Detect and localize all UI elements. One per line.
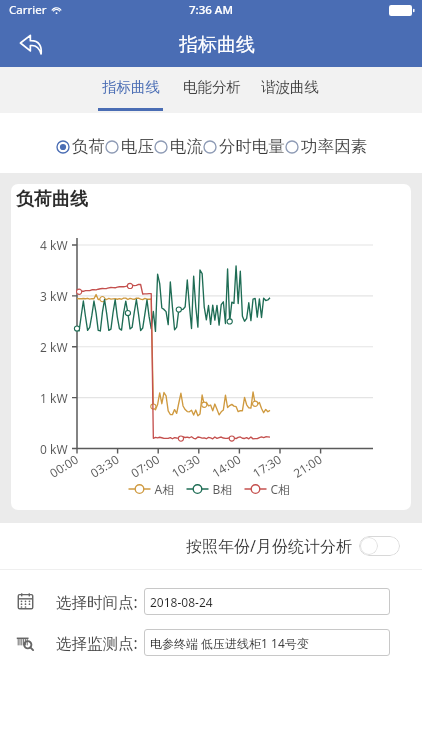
button[interactable]: 指标曲线 bbox=[88, 67, 173, 113]
staticText: 电能分析 bbox=[183, 78, 241, 96]
staticText: 负荷 bbox=[72, 136, 105, 157]
staticText: 选择监测点: bbox=[56, 632, 138, 653]
staticText: 谐波曲线 bbox=[261, 78, 319, 96]
staticText: 指标曲线 bbox=[179, 33, 255, 57]
staticText: 功率因素 bbox=[301, 136, 367, 157]
staticText: 电流 bbox=[170, 136, 203, 157]
button[interactable]: 选择时间点: bbox=[0, 581, 422, 622]
staticText: Carrier bbox=[9, 2, 47, 18]
staticText: 负荷曲线 bbox=[16, 188, 88, 211]
staticText: 7:36 AM bbox=[189, 2, 233, 18]
staticText: 分时电量 bbox=[219, 136, 285, 157]
button[interactable]: 按照年份/月份统计分析 bbox=[186, 535, 400, 557]
staticText: 按照年份/月份统计分析 bbox=[186, 535, 352, 557]
button[interactable]: 电流 bbox=[154, 136, 203, 157]
button[interactable]: 功率因素 bbox=[285, 136, 367, 157]
button[interactable]: 电压 bbox=[105, 136, 154, 157]
button[interactable]: 选择监测点: bbox=[0, 622, 422, 663]
staticText: 电压 bbox=[121, 136, 154, 157]
button[interactable]: 电能分析 bbox=[173, 67, 251, 113]
staticText: 电参终端 低压进线柜1 14号变 bbox=[150, 635, 309, 651]
staticText: 指标曲线 bbox=[102, 78, 160, 96]
button[interactable]: 负荷 bbox=[56, 136, 105, 157]
button[interactable]: 谐波曲线 bbox=[251, 67, 329, 113]
button[interactable]: Back bbox=[9, 22, 53, 66]
staticText: 选择时间点: bbox=[56, 591, 138, 612]
button[interactable]: 分时电量 bbox=[203, 136, 285, 157]
staticText: 2018-08-24 bbox=[150, 594, 213, 610]
